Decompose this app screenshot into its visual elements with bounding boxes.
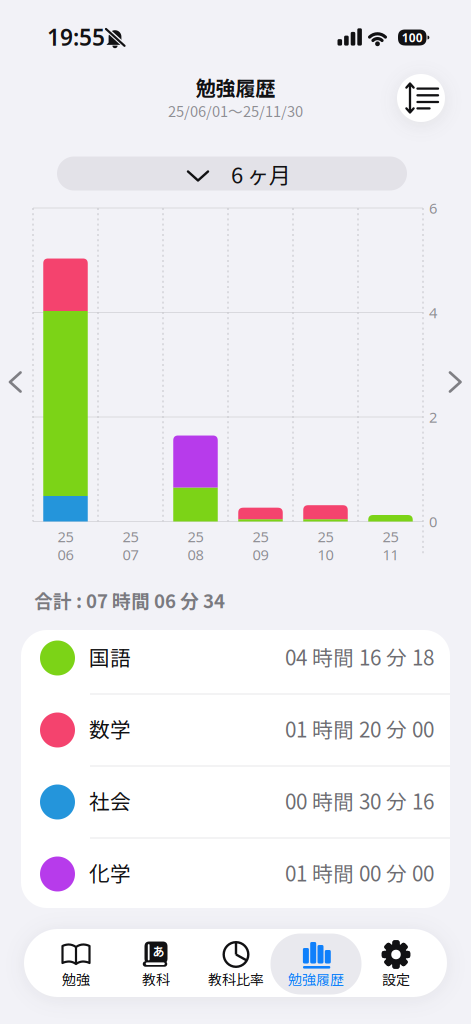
staticText: 11 bbox=[382, 545, 398, 564]
button[interactable]: 前へ bbox=[8, 371, 22, 393]
staticText: 25 bbox=[57, 527, 73, 546]
staticText: 社会 bbox=[89, 785, 131, 815]
staticText: 化学 bbox=[89, 857, 131, 887]
staticText: 00 時間 30 分 16 bbox=[285, 785, 434, 815]
staticText: 勉強 bbox=[62, 969, 90, 989]
staticText: 25 bbox=[252, 527, 268, 546]
staticText: 25/06/01〜25/11/30 bbox=[168, 100, 303, 121]
staticText: 04 時間 16 分 18 bbox=[285, 641, 434, 671]
staticText: 国語 bbox=[89, 641, 131, 671]
staticText: 2 bbox=[429, 407, 437, 427]
staticText: 10 bbox=[317, 545, 333, 564]
staticText: 教科比率 bbox=[208, 969, 264, 989]
staticText: 19:55 bbox=[47, 22, 105, 52]
staticText: 勉強履歴 bbox=[288, 969, 344, 989]
button[interactable]: 教科比率 bbox=[192, 930, 280, 992]
button[interactable]: 次へ bbox=[448, 371, 462, 393]
button[interactable]: 6 ヶ月 bbox=[57, 156, 407, 190]
staticText: 01 時間 20 分 00 bbox=[285, 713, 434, 743]
staticText: 6 ヶ月 bbox=[231, 158, 291, 190]
staticText: 25 bbox=[317, 527, 333, 546]
staticText: 01 時間 00 分 00 bbox=[285, 857, 434, 887]
button[interactable]: 並び替え bbox=[397, 74, 445, 122]
staticText: 07 bbox=[122, 545, 138, 564]
staticText: 100 bbox=[402, 29, 423, 45]
staticText: 設定 bbox=[382, 969, 410, 989]
staticText: 06 bbox=[57, 545, 73, 564]
staticText: 教科 bbox=[142, 969, 170, 989]
button[interactable]: 設定 bbox=[352, 930, 440, 992]
staticText: 25 bbox=[382, 527, 398, 546]
staticText: 合計 : 07 時間 06 分 34 bbox=[34, 586, 225, 613]
button[interactable]: あ bbox=[112, 930, 200, 992]
button[interactable]: 勉強履歴 bbox=[272, 930, 360, 992]
staticText: 数学 bbox=[89, 713, 131, 743]
staticText: 25 bbox=[122, 527, 138, 546]
staticText: 4 bbox=[429, 303, 437, 322]
staticText: 09 bbox=[252, 545, 268, 564]
staticText: 勉強履歴 bbox=[195, 72, 275, 101]
staticText: 08 bbox=[187, 545, 203, 564]
staticText: 0 bbox=[429, 512, 437, 531]
staticText: あ bbox=[152, 942, 164, 960]
button[interactable]: 勉強 bbox=[32, 930, 120, 992]
staticText: 6 bbox=[429, 198, 437, 218]
staticText: 25 bbox=[187, 527, 203, 546]
